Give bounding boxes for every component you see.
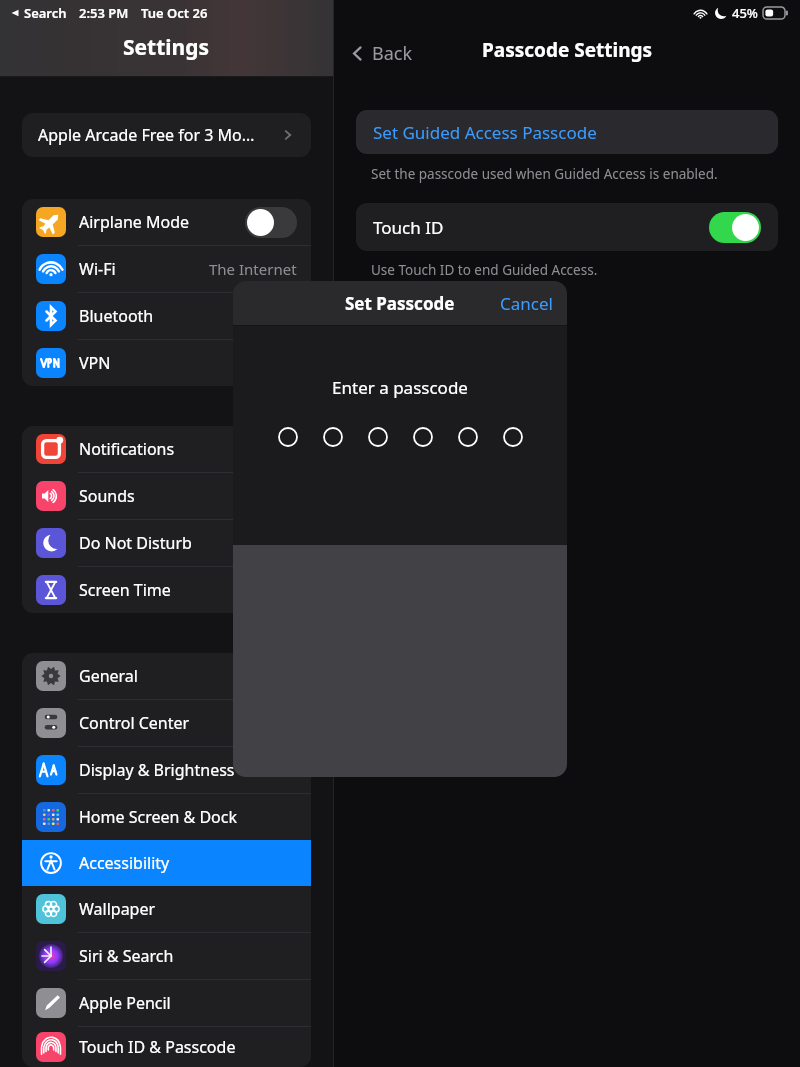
staticText: Siri & Search	[79, 945, 297, 967]
staticText: Back	[372, 41, 413, 66]
staticText: Wi-Fi	[79, 258, 209, 280]
staticText: 45%	[732, 4, 758, 22]
button[interactable]: Touch ID & Passcode	[22, 1027, 311, 1067]
staticText: Cancel	[500, 292, 553, 315]
staticText: Bluetooth	[79, 305, 297, 327]
staticText: Set Guided Access Passcode	[373, 121, 597, 144]
staticText: Set Passcode	[345, 292, 455, 315]
staticText: Settings	[123, 33, 210, 62]
staticText: The Internet	[209, 259, 297, 279]
button[interactable]: Toggle	[709, 212, 761, 243]
button[interactable]: Back	[348, 41, 413, 66]
staticText: Search	[24, 4, 67, 22]
staticText: Apple Pencil	[79, 992, 297, 1014]
staticText: Tue Oct 26	[141, 4, 208, 22]
button[interactable]: General	[22, 653, 311, 699]
staticText: Do Not Disturb	[79, 532, 297, 554]
staticText: Home Screen & Dock	[79, 806, 297, 828]
staticText: VPN	[79, 352, 297, 374]
button[interactable]: VPN	[22, 340, 311, 386]
button[interactable]: Airplane Mode	[22, 199, 311, 245]
staticText: Airplane Mode	[79, 211, 245, 233]
button[interactable]: Display & Brightness	[22, 747, 311, 793]
button[interactable]: Wi-Fi	[22, 246, 311, 292]
button[interactable]: Toggle	[245, 207, 297, 238]
staticText: Sounds	[79, 485, 297, 507]
button[interactable]: Do Not Disturb	[22, 520, 311, 566]
staticText: Notifications	[79, 438, 297, 460]
button[interactable]: Cancel	[486, 284, 567, 323]
staticText: Touch ID	[373, 216, 709, 239]
button[interactable]: Notifications	[22, 426, 311, 472]
button[interactable]: Home Screen & Dock	[22, 794, 311, 840]
button[interactable]: Sounds	[22, 473, 311, 519]
staticText: General	[79, 665, 297, 687]
staticText: Control Center	[79, 712, 297, 734]
button[interactable]: Siri & Search	[22, 933, 311, 979]
staticText: Touch ID & Passcode	[79, 1036, 297, 1058]
button[interactable]: Apple Arcade Free for 3 Mo…	[22, 113, 311, 157]
staticText: Apple Arcade Free for 3 Mo…	[38, 124, 281, 146]
button[interactable]: Accessibility	[22, 840, 311, 886]
button[interactable]: Wallpaper	[22, 886, 311, 932]
button[interactable]: Screen Time	[22, 567, 311, 613]
staticText: Set the passcode used when Guided Access…	[371, 165, 718, 183]
button[interactable]: Touch ID	[356, 203, 778, 251]
button[interactable]: Apple Pencil	[22, 980, 311, 1026]
staticText: 2:53 PM	[79, 4, 129, 22]
staticText: Passcode Settings	[482, 37, 653, 63]
staticText: Display & Brightness	[79, 759, 297, 781]
button[interactable]: Bluetooth	[22, 293, 311, 339]
staticText: Enter a passcode	[233, 376, 567, 399]
staticText: Screen Time	[79, 579, 297, 601]
staticText: Accessibility	[79, 852, 297, 874]
staticText: Use Touch ID to end Guided Access.	[371, 261, 598, 279]
button[interactable]: Set Guided Access Passcode	[356, 110, 778, 154]
button[interactable]: Control Center	[22, 700, 311, 746]
staticText: Wallpaper	[79, 898, 297, 920]
